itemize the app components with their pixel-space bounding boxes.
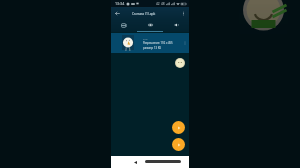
button[interactable]: More options <box>177 7 189 19</box>
button[interactable]: Audio <box>163 19 189 31</box>
button[interactable]: Play <box>172 121 185 134</box>
button[interactable]: Back <box>131 158 139 166</box>
staticText: Разрешение: 192 x 455 <box>143 41 173 45</box>
button[interactable]: Item menu <box>181 39 189 47</box>
button[interactable]: Documents <box>111 19 137 31</box>
button[interactable]: RAR <box>111 33 189 53</box>
staticText: RAR <box>143 37 148 40</box>
button[interactable]: Back <box>111 7 123 19</box>
button[interactable]: Home <box>145 160 181 163</box>
staticText: 48 <box>161 2 165 6</box>
staticText: размер: 13 КБ <box>143 46 162 50</box>
staticText: Съемка (1).apk <box>132 11 156 15</box>
staticText: 42 <box>156 2 160 6</box>
button[interactable]: Images <box>137 19 163 31</box>
button[interactable]: Play <box>172 138 185 151</box>
staticText: 13:34 <box>115 1 125 6</box>
